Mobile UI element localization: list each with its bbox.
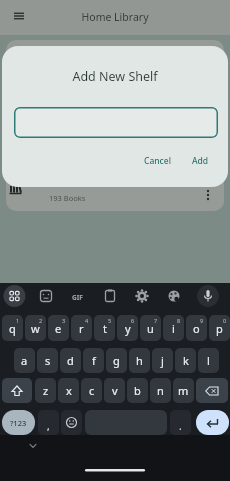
- staticText: 8: [177, 317, 181, 324]
- staticText: q: [9, 321, 16, 336]
- button[interactable]: u: [140, 315, 161, 341]
- staticText: ,: [47, 419, 50, 433]
- button[interactable]: l: [198, 348, 219, 373]
- button[interactable]: e: [48, 315, 69, 341]
- staticText: 2: [39, 317, 43, 324]
- button[interactable]: o: [186, 315, 207, 341]
- staticText: h: [136, 353, 143, 368]
- button[interactable]: [2, 378, 32, 403]
- staticText: o: [193, 321, 200, 336]
- staticText: m: [178, 383, 189, 398]
- staticText: p: [216, 321, 223, 336]
- button[interactable]: d: [60, 348, 81, 373]
- button[interactable]: q: [2, 315, 23, 341]
- button[interactable]: z: [35, 378, 56, 403]
- staticText: e: [55, 321, 62, 336]
- staticText: v: [112, 383, 118, 398]
- staticText: 6: [131, 317, 135, 324]
- staticText: GIF: [72, 293, 83, 302]
- staticText: d: [67, 353, 74, 368]
- button[interactable]: [196, 410, 229, 435]
- staticText: i: [172, 321, 175, 336]
- staticText: x: [66, 383, 72, 398]
- button[interactable]: [14, 107, 218, 138]
- button[interactable]: p: [209, 315, 230, 341]
- button[interactable]: x: [58, 378, 79, 403]
- staticText: 0: [223, 317, 227, 324]
- staticText: 3: [62, 317, 66, 324]
- staticText: f: [92, 353, 96, 368]
- button[interactable]: t: [94, 315, 115, 341]
- staticText: s: [45, 353, 51, 368]
- button[interactable]: w: [25, 315, 46, 341]
- button[interactable]: [61, 410, 82, 435]
- button[interactable]: .: [170, 410, 191, 435]
- staticText: 7: [154, 317, 158, 324]
- staticText: n: [157, 383, 164, 398]
- staticText: g: [113, 353, 120, 368]
- staticText: c: [89, 383, 95, 398]
- button[interactable]: i: [163, 315, 184, 341]
- button[interactable]: n: [150, 378, 171, 403]
- staticText: l: [207, 353, 210, 368]
- button[interactable]: 193 Books: [6, 40, 224, 211]
- button[interactable]: b: [127, 378, 148, 403]
- staticText: t: [103, 321, 107, 336]
- staticText: r: [79, 321, 84, 336]
- staticText: Add New Shelf: [2, 68, 228, 85]
- staticText: b: [134, 383, 141, 398]
- button[interactable]: c: [81, 378, 102, 403]
- button[interactable]: [85, 410, 167, 435]
- button[interactable]: m: [173, 378, 194, 403]
- staticText: 9: [200, 317, 204, 324]
- staticText: y: [125, 321, 131, 336]
- button[interactable]: ?123: [2, 410, 35, 435]
- staticText: k: [183, 353, 189, 368]
- staticText: a: [21, 353, 28, 368]
- button[interactable]: Add: [184, 152, 216, 170]
- staticText: 1: [16, 317, 20, 324]
- button[interactable]: [196, 378, 228, 403]
- staticText: z: [43, 383, 49, 398]
- button[interactable]: r: [71, 315, 92, 341]
- button[interactable]: k: [175, 348, 196, 373]
- button[interactable]: g: [106, 348, 127, 373]
- staticText: ?123: [10, 418, 27, 428]
- button[interactable]: j: [152, 348, 173, 373]
- staticText: Cancel: [144, 155, 171, 167]
- staticText: .: [179, 419, 182, 433]
- button[interactable]: y: [117, 315, 138, 341]
- button[interactable]: v: [104, 378, 125, 403]
- button[interactable]: Home Library: [0, 0, 230, 35]
- staticText: 4: [85, 317, 89, 324]
- button[interactable]: h: [129, 348, 150, 373]
- staticText: Home Library: [0, 10, 230, 24]
- button[interactable]: f: [83, 348, 104, 373]
- staticText: j: [161, 353, 164, 368]
- staticText: 5: [108, 317, 112, 324]
- staticText: 193 Books: [49, 193, 86, 203]
- button[interactable]: s: [37, 348, 58, 373]
- button[interactable]: Cancel: [138, 152, 176, 170]
- staticText: Add: [192, 155, 209, 167]
- button[interactable]: a: [14, 348, 35, 373]
- button[interactable]: ,: [38, 410, 59, 435]
- staticText: u: [147, 321, 154, 336]
- staticText: w: [31, 321, 40, 336]
